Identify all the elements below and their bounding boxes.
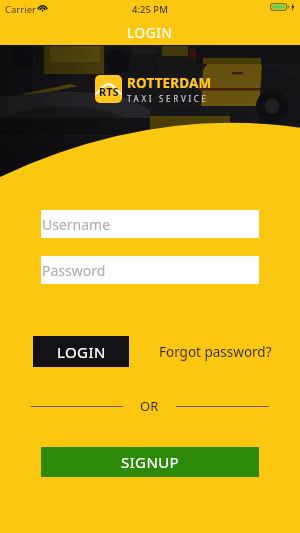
staticText: Forgot password? (159, 343, 272, 361)
staticText: OR (140, 397, 159, 415)
staticText: LOGIN (127, 24, 173, 42)
button[interactable]: Password (41, 256, 259, 284)
staticText: TAXI SERVICE (127, 93, 209, 104)
button[interactable]: SIGNUP (41, 447, 259, 477)
staticText: ROTTERDAM (127, 74, 212, 92)
staticText: Username (42, 215, 111, 234)
staticText: SIGNUP (121, 452, 180, 472)
other: Battery charging (270, 3, 296, 11)
button[interactable]: Username (41, 210, 259, 238)
staticText: Carrier (5, 3, 36, 16)
staticText: 4:25 PM (132, 3, 168, 16)
button[interactable]: LOGIN (33, 336, 129, 367)
button[interactable]: Forgot password? (159, 338, 272, 365)
other: Wi-Fi signal (37, 4, 48, 12)
staticText: LOGIN (57, 342, 106, 362)
staticText: Password (42, 261, 106, 280)
staticText: RTS (99, 84, 119, 99)
